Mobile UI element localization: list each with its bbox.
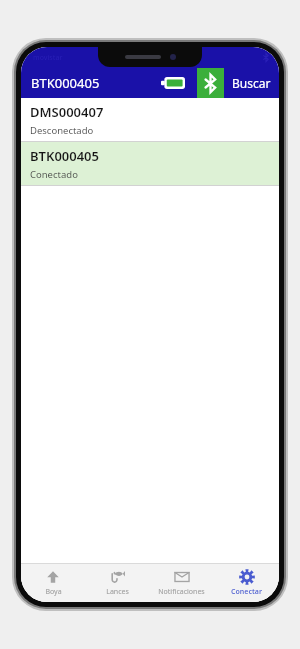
staticText: Boya xyxy=(45,587,62,597)
button[interactable]: DMS000407 xyxy=(21,98,279,141)
staticText: movistar xyxy=(33,53,63,63)
staticText: BTK000405 xyxy=(30,147,99,165)
staticText: Notificaciones xyxy=(158,587,205,597)
staticText: DMS000407 xyxy=(30,103,104,121)
staticText: BTK000405 xyxy=(31,74,100,92)
button[interactable]: Conectar xyxy=(214,564,279,602)
button[interactable]: Lances xyxy=(85,564,149,602)
staticText: Desconectado xyxy=(30,124,94,137)
button[interactable]: Battery level xyxy=(161,77,185,89)
staticText: Buscar xyxy=(232,75,271,91)
staticText: Conectado xyxy=(30,168,78,181)
button[interactable]: BTK000405 xyxy=(21,142,279,185)
button[interactable]: Notificaciones xyxy=(149,564,214,602)
staticText: Lances xyxy=(106,587,129,597)
staticText: Conectar xyxy=(231,587,262,597)
button[interactable]: Boya xyxy=(21,564,85,602)
button[interactable]: Bluetooth xyxy=(197,68,224,98)
button[interactable]: Buscar xyxy=(224,75,279,91)
